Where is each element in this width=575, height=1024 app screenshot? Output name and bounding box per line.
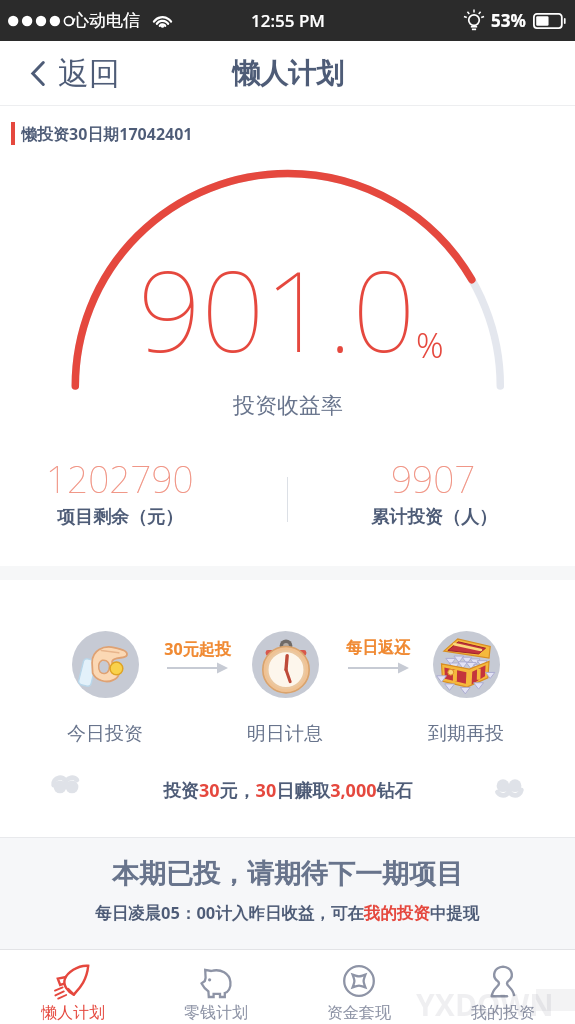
staticText: 每日凌晨05：00计入昨日收益，可在我的投资中提现 (95, 901, 480, 924)
staticText: 每日返还 (346, 638, 410, 658)
staticText: 资金套现 (327, 1003, 391, 1023)
staticText: 懒人计划 (232, 56, 344, 91)
staticText: % (416, 322, 444, 368)
staticText: 懒投资30日期17042401 (21, 123, 193, 145)
staticText: 零钱计划 (184, 1003, 248, 1023)
button[interactable]: 到期再投 (416, 631, 516, 746)
staticText: 30元起投 (164, 638, 231, 660)
button[interactable]: 返回 Back (25, 46, 126, 101)
button[interactable]: 我的投资 (431, 951, 574, 1024)
staticText: 9907 (391, 453, 476, 503)
button[interactable]: 今日投资 (55, 631, 155, 746)
button[interactable]: 资金套现 (287, 951, 430, 1024)
staticText: 投资收益率 (233, 392, 343, 420)
button[interactable]: 零钱计划 (144, 951, 287, 1024)
staticText: 心动电信 (72, 10, 140, 31)
staticText: 本期已投，请期待下一期项目 (112, 857, 463, 891)
staticText: 12:55 PM (251, 9, 325, 32)
staticText: 投资30元，30日赚取3,000钻石 (163, 778, 413, 803)
button[interactable]: 明日计息 (235, 631, 335, 746)
staticText: 到期再投 (428, 722, 504, 746)
button[interactable]: 懒人计划 (1, 951, 144, 1024)
staticText: 901.0 (138, 233, 416, 384)
staticText: 返回 (58, 54, 120, 93)
staticText: 项目剩余（元） (57, 506, 183, 529)
staticText: 我的投资 (471, 1003, 535, 1023)
staticText: 懒人计划 (41, 1003, 105, 1023)
staticText: 累计投资（人） (371, 506, 497, 529)
staticText: YXDOWN (416, 984, 554, 1024)
staticText: 明日计息 (247, 722, 323, 746)
staticText: 53% (491, 9, 526, 32)
staticText: 今日投资 (67, 722, 143, 746)
staticText: 1202790 (46, 453, 194, 503)
